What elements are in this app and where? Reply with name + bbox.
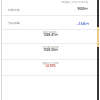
staticText: 1500.00円 (43, 48, 58, 52)
staticText: +1346円 (77, 22, 89, 26)
staticText: 1268.41円 (43, 33, 58, 37)
button[interactable]: 損益の上昇率 (0, 61, 100, 68)
staticText: 損益の上昇率 (42, 61, 59, 64)
staticText: 含み損益 (8, 21, 20, 25)
staticText: -14.10% (44, 64, 56, 68)
staticText: 9000円 (77, 7, 88, 11)
button[interactable]: 累計投資額 (0, 30, 100, 37)
button[interactable]: 含み損益 (0, 16, 100, 29)
button[interactable]: 投資元本 (0, 0, 100, 15)
staticText: 累計投資額 (43, 30, 57, 33)
staticText: 平均取得単価 (42, 45, 59, 48)
staticText: 投資元本 (8, 8, 20, 12)
button[interactable]: 平均取得単価 (0, 45, 100, 52)
staticText: 投資額に対する前月比 (61, 0, 89, 3)
